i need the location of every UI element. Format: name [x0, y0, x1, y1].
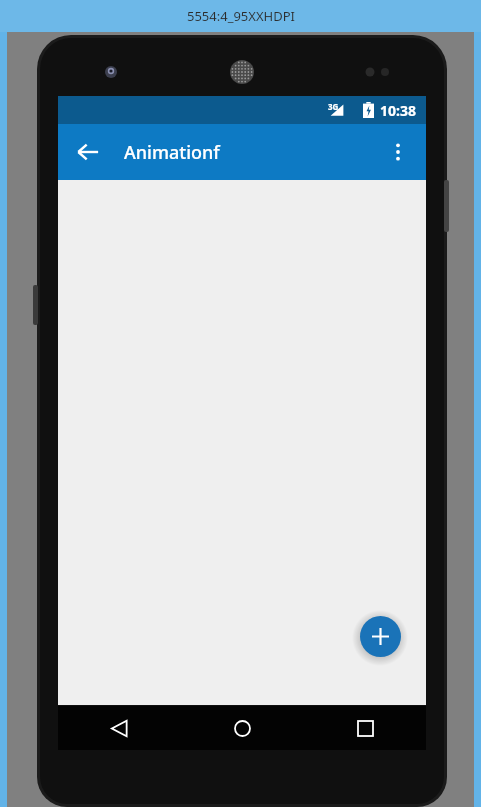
button[interactable]: Recent apps — [341, 706, 389, 750]
button[interactable]: Navigate up — [66, 130, 110, 174]
staticText: 3G — [328, 101, 339, 112]
button[interactable]: Add — [360, 616, 401, 657]
button[interactable]: Back — [95, 706, 143, 750]
button[interactable]: More options — [376, 130, 420, 174]
staticText: 10:38 — [380, 101, 416, 120]
button[interactable]: Home — [218, 706, 266, 750]
staticText: 5554:4_95XXHDPI — [187, 7, 295, 25]
staticText: Animationf — [124, 140, 220, 165]
